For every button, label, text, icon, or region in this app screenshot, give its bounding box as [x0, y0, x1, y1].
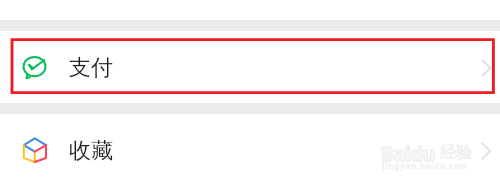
- staticText: 收藏: [69, 137, 113, 165]
- staticText: 支付: [69, 54, 113, 82]
- staticText: 经验: [440, 143, 472, 163]
- staticText: Baidu: [381, 141, 436, 167]
- staticText: jingyan.baidu.com: [382, 160, 469, 171]
- button[interactable]: 收藏: [0, 114, 500, 183]
- button[interactable]: 支付: [0, 31, 500, 103]
